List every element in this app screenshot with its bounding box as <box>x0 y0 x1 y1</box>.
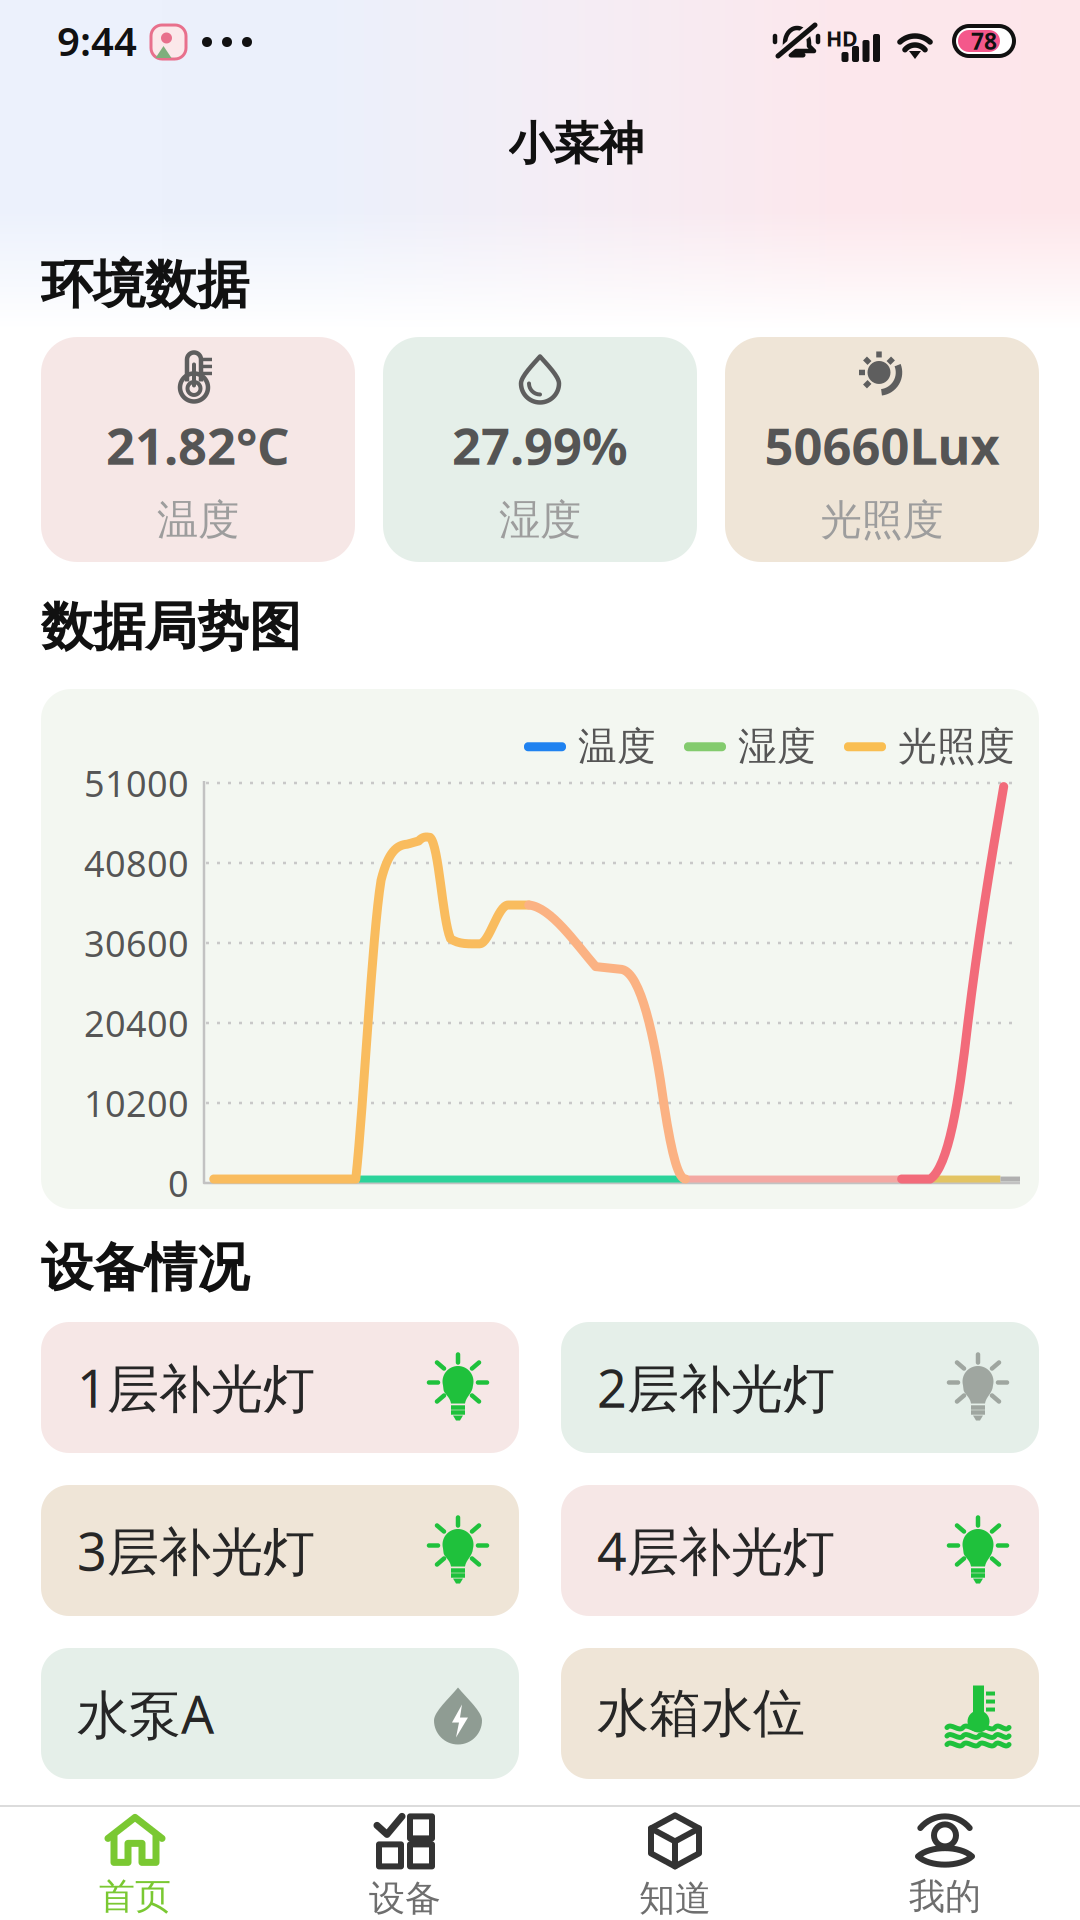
staticText: 21.82°C <box>106 411 290 479</box>
button[interactable]: 小菜神 <box>0 88 1080 200</box>
staticText: 知道 <box>639 1876 711 1920</box>
staticText: 小菜神 <box>508 116 643 172</box>
staticText: 27.99% <box>452 411 628 479</box>
staticText: 78 <box>971 26 997 56</box>
button[interactable]: 1层补光灯 <box>41 1322 519 1453</box>
staticText: 水泵A <box>77 1679 214 1748</box>
button[interactable]: 水泵A <box>41 1648 519 1779</box>
staticText: 设备 <box>369 1876 441 1920</box>
button[interactable]: 27.99% <box>383 337 697 562</box>
button[interactable]: 50660Lux <box>725 337 1039 562</box>
staticText: 0 <box>168 1159 189 1207</box>
staticText: 水箱水位 <box>597 1682 805 1745</box>
staticText: 40800 <box>84 839 189 887</box>
staticText: 温度 <box>578 723 656 770</box>
staticText: 设备情况 <box>41 1236 249 1300</box>
staticText: 3层补光灯 <box>77 1516 315 1585</box>
staticText: 数据局势图 <box>41 595 301 659</box>
staticText: 湿度 <box>738 723 816 770</box>
staticText: HD <box>826 24 858 52</box>
button[interactable]: 4层补光灯 <box>561 1485 1039 1616</box>
button[interactable]: 我的 <box>810 1807 1080 1920</box>
staticText: 2层补光灯 <box>597 1353 835 1422</box>
staticText: 湿度 <box>499 495 581 546</box>
staticText: 30600 <box>84 919 189 967</box>
staticText: 我的 <box>909 1874 981 1919</box>
staticText: 光照度 <box>820 495 943 546</box>
button[interactable]: 水箱水位 <box>561 1648 1039 1779</box>
staticText: 9:44 <box>57 14 137 67</box>
button[interactable]: 首页 <box>0 1807 270 1920</box>
button[interactable]: 知道 <box>540 1807 810 1920</box>
staticText: 51000 <box>84 759 189 807</box>
button[interactable]: 3层补光灯 <box>41 1485 519 1616</box>
staticText: 环境数据 <box>41 253 249 317</box>
staticText: 50660Lux <box>764 411 999 479</box>
staticText: 4层补光灯 <box>597 1516 835 1585</box>
staticText: 光照度 <box>898 723 1015 770</box>
staticText: 首页 <box>99 1874 171 1919</box>
staticText: 温度 <box>157 495 239 546</box>
button[interactable]: 21.82°C <box>41 337 355 562</box>
staticText: 20400 <box>84 999 189 1047</box>
button[interactable]: 2层补光灯 <box>561 1322 1039 1453</box>
staticText: 10200 <box>84 1079 189 1127</box>
staticText: 1层补光灯 <box>77 1353 315 1422</box>
button[interactable]: 设备 <box>270 1807 540 1920</box>
